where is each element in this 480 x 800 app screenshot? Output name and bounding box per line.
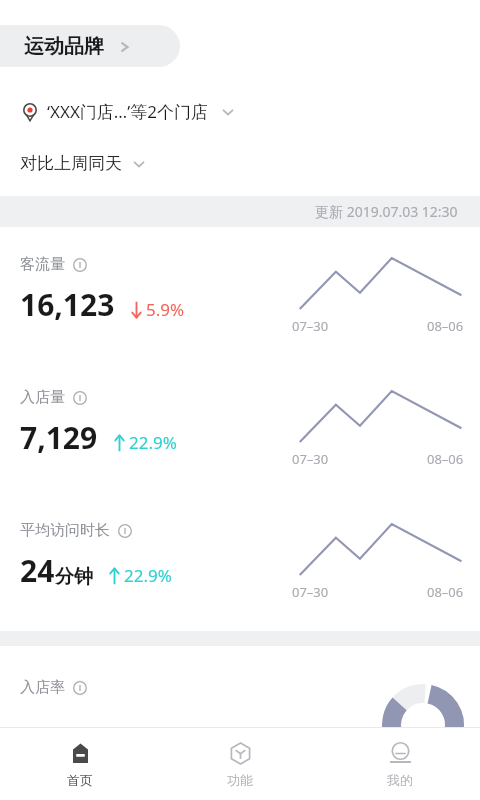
- staticText: 首页: [67, 772, 93, 788]
- staticText: 5.9%: [146, 298, 185, 321]
- button[interactable]: ‘XXX门店…’等2个门店: [20, 100, 480, 123]
- staticText: 我的: [387, 772, 413, 788]
- staticText: 07–30: [292, 583, 329, 601]
- staticText: 客流量: [20, 255, 65, 274]
- button[interactable]: 入店量: [0, 360, 480, 493]
- staticText: 分钟: [55, 565, 93, 589]
- button[interactable]: 入店率: [0, 646, 480, 731]
- staticText: 22.9%: [129, 431, 177, 454]
- staticText: 07–30: [292, 450, 329, 468]
- staticText: 功能: [227, 772, 253, 788]
- staticText: 07–30: [292, 317, 329, 335]
- button[interactable]: 对比上周同天: [20, 153, 480, 174]
- staticText: 更新 2019.07.03 12:30: [315, 202, 458, 221]
- staticText: 08–06: [427, 450, 464, 468]
- button[interactable]: 运动品牌: [0, 25, 180, 67]
- staticText: 平均访问时长: [20, 521, 110, 540]
- staticText: 入店量: [20, 388, 65, 407]
- staticText: 08–06: [427, 583, 464, 601]
- staticText: 16,123: [20, 284, 115, 325]
- staticText: ‘XXX门店…’等2个门店: [47, 100, 209, 123]
- staticText: 入店率: [20, 678, 65, 697]
- button[interactable]: 首页: [0, 728, 160, 800]
- button[interactable]: 平均访问时长: [0, 493, 480, 626]
- staticText: 24: [20, 550, 55, 591]
- staticText: 08–06: [427, 317, 464, 335]
- button[interactable]: 功能: [160, 728, 320, 800]
- staticText: 对比上周同天: [20, 153, 122, 174]
- button[interactable]: 我的: [320, 728, 480, 800]
- staticText: 7,129: [20, 417, 98, 458]
- button[interactable]: 客流量: [0, 227, 480, 360]
- staticText: 运动品牌: [24, 34, 104, 59]
- staticText: 22.9%: [124, 564, 172, 587]
